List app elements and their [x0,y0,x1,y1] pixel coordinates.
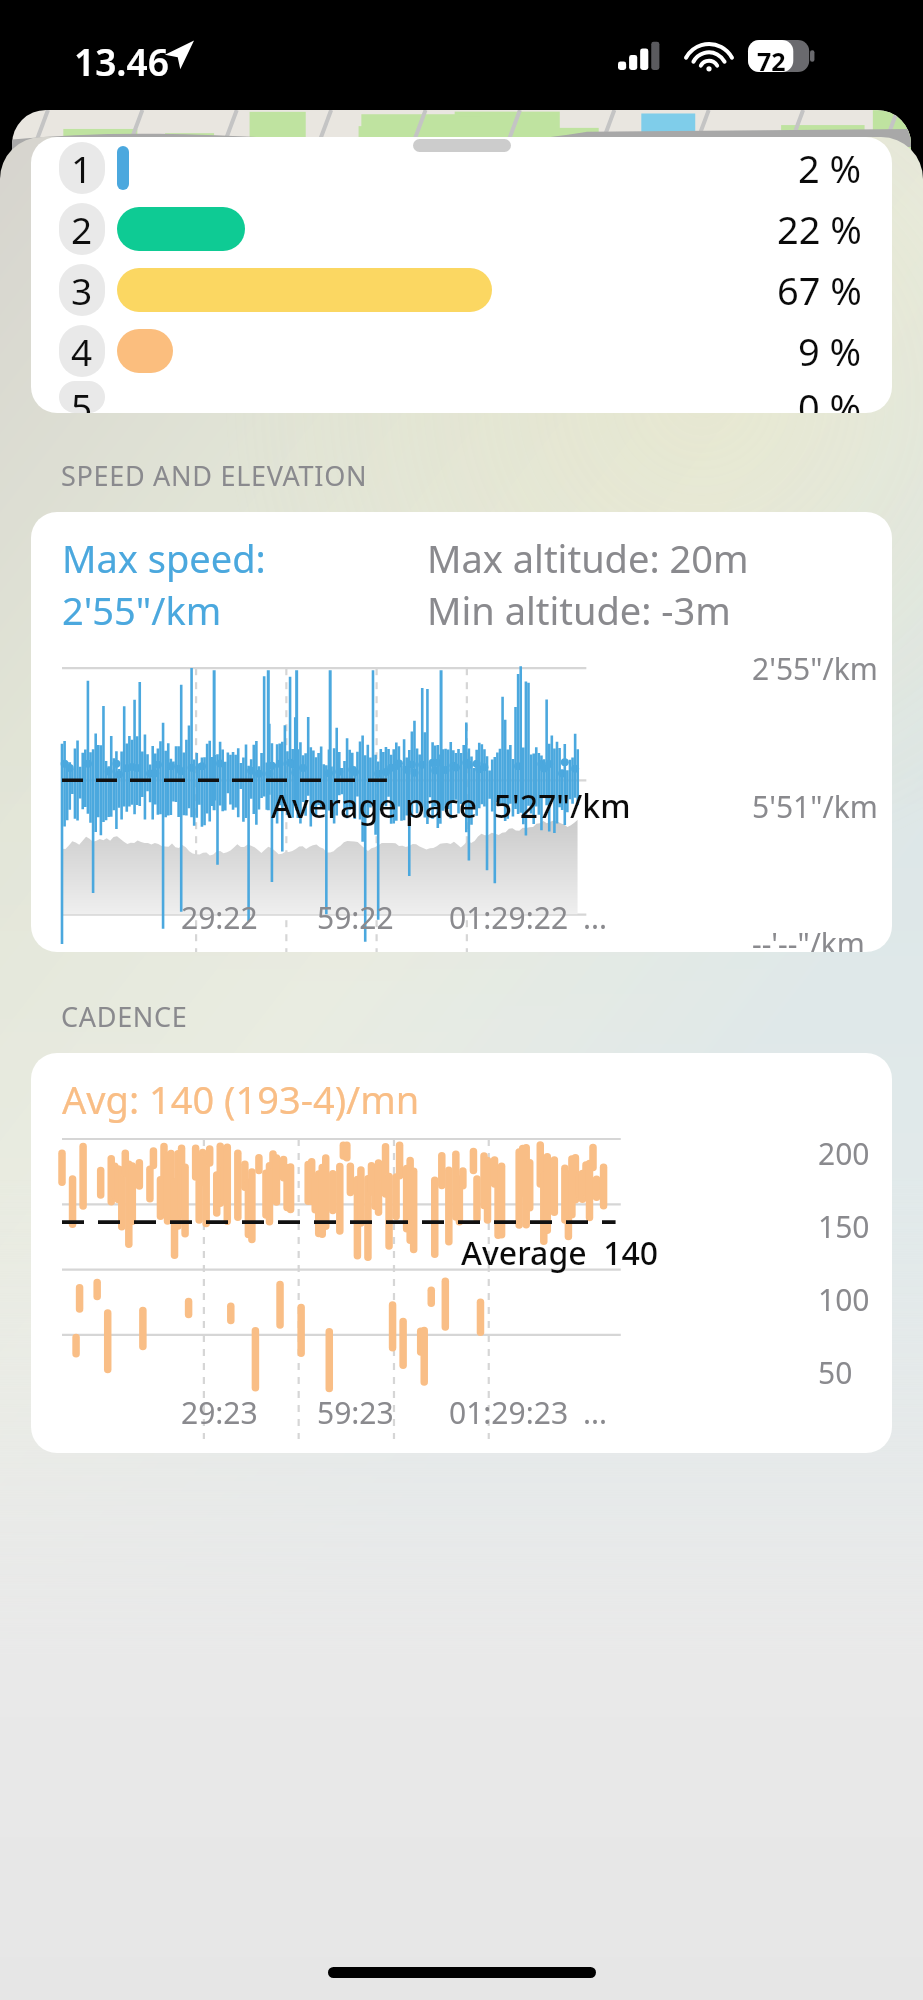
staticText: 22 % [777,203,862,255]
staticText: Average 140 [461,1231,659,1275]
staticText: 2'55"/km [752,648,878,689]
staticText: 100 [818,1279,870,1320]
staticText: 0 % [798,381,862,413]
staticText: 29:23 [181,1392,258,1433]
staticText: 5 [71,381,93,413]
staticText: 59:23 [317,1392,394,1433]
staticText: ... [583,897,608,938]
staticText: CADENCE [61,998,188,1035]
staticText: 01:29:22 [449,897,569,938]
staticText: 67 % [777,264,862,316]
staticText: Max altitude: 20m [427,532,749,584]
staticText: 4 [71,326,93,376]
staticText: 1 [71,143,93,193]
staticText: 150 [818,1206,870,1247]
staticText: --'--"/km [752,923,865,952]
button[interactable]: 1 [31,137,892,413]
other: Location active [163,38,195,70]
staticText: 59:22 [317,897,394,938]
staticText: 72 [757,44,786,78]
staticText: 5'51"/km [752,786,878,827]
staticText: SPEED AND ELEVATION [61,457,368,494]
staticText: 2 % [798,142,862,194]
staticText: 2 [71,204,93,254]
button[interactable]: 2 [31,198,892,259]
staticText: 50 [818,1352,853,1393]
staticText: 200 [818,1133,870,1174]
button[interactable]: 3 [31,259,892,320]
staticText: 29:22 [181,897,258,938]
staticText: Max speed: [62,532,266,584]
staticText: Min altitude: -3m [427,584,731,636]
staticText: 13.46 [74,36,169,86]
staticText: ... [583,1392,608,1433]
button[interactable]: 1 [31,137,892,198]
staticText: Avg: 140 (193-4)/mn [62,1073,420,1125]
staticText: Average pace 5'27"/km [271,784,631,828]
staticText: 3 [71,265,93,315]
button[interactable]: 4 [31,320,892,381]
button[interactable]: Max speed: [31,512,892,952]
staticText: 01:29:23 [449,1392,569,1433]
staticText: 2'55"/km [62,584,222,636]
button[interactable]: Avg: 140 (193-4)/mn [31,1053,892,1453]
button[interactable]: 5 [31,381,892,413]
staticText: 9 % [798,325,862,377]
